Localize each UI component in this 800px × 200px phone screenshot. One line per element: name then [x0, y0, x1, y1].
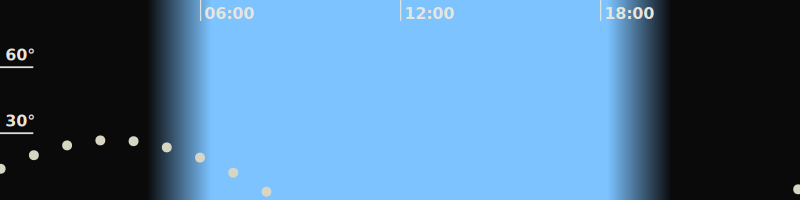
staticText: 60°: [5, 46, 35, 64]
staticText: 12:00: [404, 4, 454, 23]
staticText: 06:00: [204, 4, 254, 23]
staticText: 18:00: [604, 4, 654, 23]
staticText: 30°: [5, 112, 35, 130]
